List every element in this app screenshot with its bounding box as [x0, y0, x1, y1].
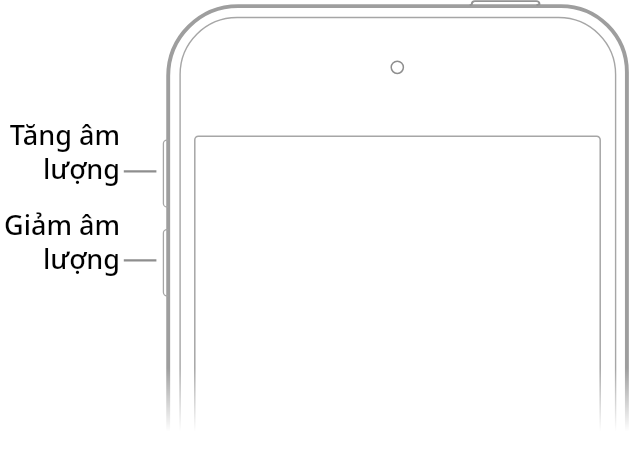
staticText: Tăng âm lượng	[0, 116, 120, 187]
other: Sơ đồ mặt trước điện thoại với các nút â…	[0, 0, 630, 452]
staticText: Giảm âm lượng	[0, 206, 120, 277]
